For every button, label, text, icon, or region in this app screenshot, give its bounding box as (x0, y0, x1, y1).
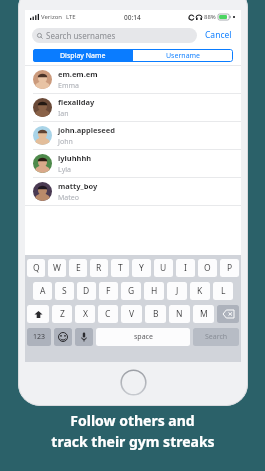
staticText: john.appleseed (58, 125, 115, 135)
staticText: M (200, 308, 208, 320)
staticText: John (58, 137, 73, 147)
staticText: Display Name (60, 51, 106, 61)
button[interactable]: Username (133, 49, 233, 62)
button[interactable]: A (33, 282, 52, 300)
staticText: K (197, 285, 203, 297)
staticText: track their gym streaks (51, 432, 215, 451)
button[interactable]: J (167, 282, 187, 300)
staticText: Search usernames (46, 30, 116, 41)
button[interactable]: C (98, 305, 118, 323)
button[interactable]: L (213, 282, 233, 300)
staticText: Username (166, 51, 201, 61)
staticText: I (184, 262, 187, 274)
staticText: F (106, 285, 111, 297)
button[interactable]: em.em.em (25, 66, 241, 93)
button[interactable]: 123 (27, 328, 51, 346)
staticText: Cancel (205, 29, 232, 41)
staticText: Search (205, 332, 228, 342)
button[interactable]: T (111, 259, 129, 277)
button[interactable]: Home (120, 369, 147, 396)
staticText: V (129, 308, 135, 320)
staticText: C (105, 308, 111, 320)
staticText: P (227, 262, 233, 274)
staticText: matty_boy (58, 181, 98, 191)
button[interactable]: Emoji (54, 328, 72, 346)
button[interactable]: I (176, 259, 195, 277)
button[interactable]: Display Name (33, 49, 133, 62)
staticText: Emma (58, 81, 79, 91)
staticText: LTE (66, 13, 76, 21)
button[interactable]: H (144, 282, 164, 300)
button[interactable]: john.appleseed (25, 122, 241, 149)
staticText: 00:14 (124, 13, 141, 22)
staticText: Y (139, 262, 144, 274)
button[interactable]: Cancel (203, 27, 234, 43)
staticText: H (151, 285, 158, 297)
button[interactable]: S (55, 282, 74, 300)
staticText: R (96, 262, 102, 274)
staticText: lyluhhhh (58, 153, 92, 163)
button[interactable]: lyluhhhh (25, 150, 241, 177)
button[interactable]: matty_boy (25, 178, 241, 205)
button[interactable]: Q (27, 259, 45, 277)
staticText: W (53, 262, 61, 274)
staticText: T (118, 262, 123, 274)
button[interactable]: K (190, 282, 210, 300)
staticText: U (160, 262, 167, 274)
button[interactable]: U (154, 259, 173, 277)
button[interactable]: Z (52, 305, 72, 323)
button[interactable]: X (75, 305, 95, 323)
button[interactable]: Y (132, 259, 151, 277)
button[interactable]: F (99, 282, 118, 300)
button[interactable]: Dictate (75, 328, 93, 346)
staticText: J (176, 285, 179, 297)
button[interactable]: R (90, 259, 108, 277)
button[interactable]: N (169, 305, 190, 323)
staticText: Mateo (58, 193, 79, 203)
button[interactable]: V (121, 305, 142, 323)
staticText: flexallday (58, 97, 95, 107)
button[interactable]: Backspace (217, 305, 239, 323)
staticText: space (134, 332, 153, 342)
button[interactable]: M (193, 305, 214, 323)
staticText: D (83, 285, 90, 297)
button[interactable]: space (96, 328, 190, 346)
button[interactable]: B (145, 305, 166, 323)
staticText: N (176, 308, 183, 320)
staticText: X (83, 308, 88, 320)
button[interactable]: Shift (27, 305, 49, 323)
staticText: Lyla (58, 165, 71, 175)
button[interactable]: P (220, 259, 239, 277)
staticText: 88% (204, 13, 216, 21)
staticText: Z (60, 308, 65, 320)
staticText: Ian (58, 109, 69, 119)
staticText: Follow others and (70, 411, 195, 430)
staticText: G (128, 285, 135, 297)
staticText: A (40, 285, 46, 297)
staticText: B (153, 308, 159, 320)
button[interactable]: G (121, 282, 141, 300)
staticText: Q (33, 262, 40, 274)
staticText: O (204, 262, 211, 274)
staticText: Verizon (41, 13, 63, 21)
staticText: L (221, 285, 226, 297)
button[interactable]: E (69, 259, 87, 277)
button[interactable]: O (198, 259, 217, 277)
staticText: em.em.em (58, 69, 98, 79)
staticText: 123 (33, 332, 46, 342)
button[interactable]: Search usernames (32, 28, 197, 43)
button[interactable]: flexallday (25, 94, 241, 121)
button[interactable]: W (48, 259, 66, 277)
button[interactable]: Search (193, 328, 239, 346)
button[interactable]: D (77, 282, 96, 300)
staticText: S (62, 285, 67, 297)
staticText: E (76, 262, 81, 274)
